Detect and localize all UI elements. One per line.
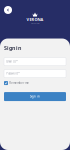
staticText: Email ID*	[6, 60, 17, 63]
button[interactable]: Remember me	[0, 78, 70, 85]
button[interactable]: Back	[4, 6, 12, 14]
staticText: Password*	[6, 72, 19, 75]
button[interactable]: Sign in	[0, 85, 70, 101]
staticText: Remember me	[9, 81, 29, 85]
staticText: VERONA	[26, 17, 43, 22]
staticText: C O L L E C T I O N	[30, 22, 39, 24]
staticText: Sign in	[30, 95, 40, 98]
staticText: Sign in	[4, 44, 21, 52]
